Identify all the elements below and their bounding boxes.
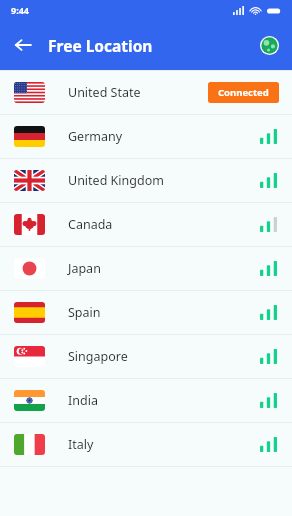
button[interactable]: Japan	[0, 247, 292, 290]
other: Signal strength	[260, 173, 279, 188]
other: Signal strength	[260, 217, 279, 232]
staticText: United Kingdom	[68, 172, 164, 189]
button[interactable]: United State	[0, 71, 292, 114]
button[interactable]: Germany	[0, 115, 292, 158]
staticText: India	[68, 392, 98, 409]
other: Signal strength	[260, 437, 279, 452]
staticText: Italy	[68, 436, 94, 453]
other: Signal strength	[260, 393, 279, 408]
button[interactable]: Globe	[255, 31, 283, 59]
button[interactable]: Italy	[0, 423, 292, 466]
other: Signal strength	[260, 261, 279, 276]
button[interactable]: Connected	[208, 82, 279, 103]
staticText: Free Location	[48, 35, 153, 56]
staticText: Connected	[218, 86, 269, 99]
staticText: Spain	[68, 304, 101, 321]
other: Signal strength	[260, 129, 279, 144]
staticText: Japan	[68, 260, 101, 277]
staticText: Canada	[68, 216, 113, 233]
staticText: 9:44	[11, 4, 29, 16]
staticText: Singapore	[68, 348, 128, 365]
staticText: Germany	[68, 128, 123, 145]
button[interactable]: India	[0, 379, 292, 422]
other: Signal strength	[260, 349, 279, 364]
button[interactable]: Back	[7, 29, 39, 61]
button[interactable]: Canada	[0, 203, 292, 246]
button[interactable]: United Kingdom	[0, 159, 292, 202]
staticText: United State	[68, 84, 141, 101]
button[interactable]: Singapore	[0, 335, 292, 378]
button[interactable]: Spain	[0, 291, 292, 334]
other: Signal strength	[260, 305, 279, 320]
